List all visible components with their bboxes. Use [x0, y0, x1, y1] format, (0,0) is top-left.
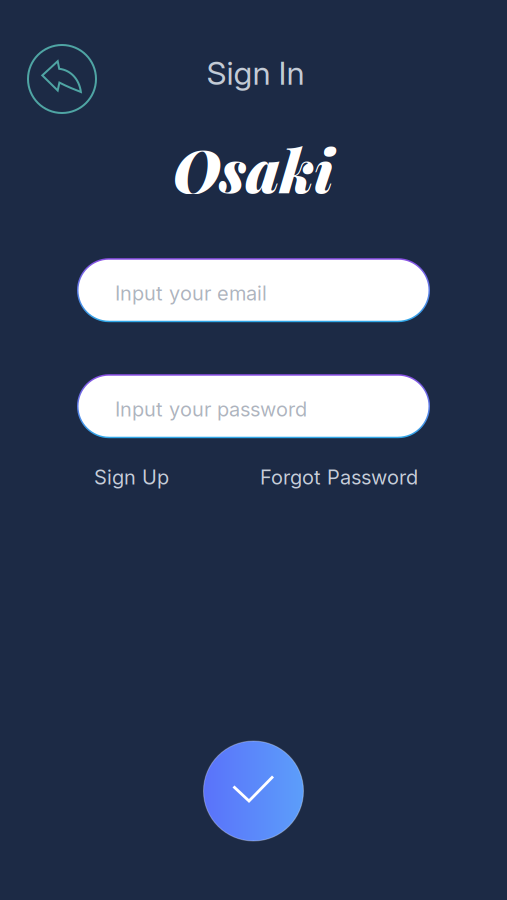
- staticText: Forgot Password: [260, 465, 418, 489]
- button[interactable]: Sign Up: [94, 465, 169, 489]
- staticText: Input your email: [115, 281, 267, 305]
- staticText: Sign Up: [94, 465, 169, 489]
- staticText: Input your password: [115, 397, 307, 421]
- button[interactable]: Back: [28, 45, 96, 113]
- button[interactable]: Submit: [203, 741, 303, 841]
- staticText: Sign In: [206, 54, 304, 92]
- staticText: Osaki: [173, 130, 334, 208]
- button[interactable]: Forgot Password: [260, 465, 418, 489]
